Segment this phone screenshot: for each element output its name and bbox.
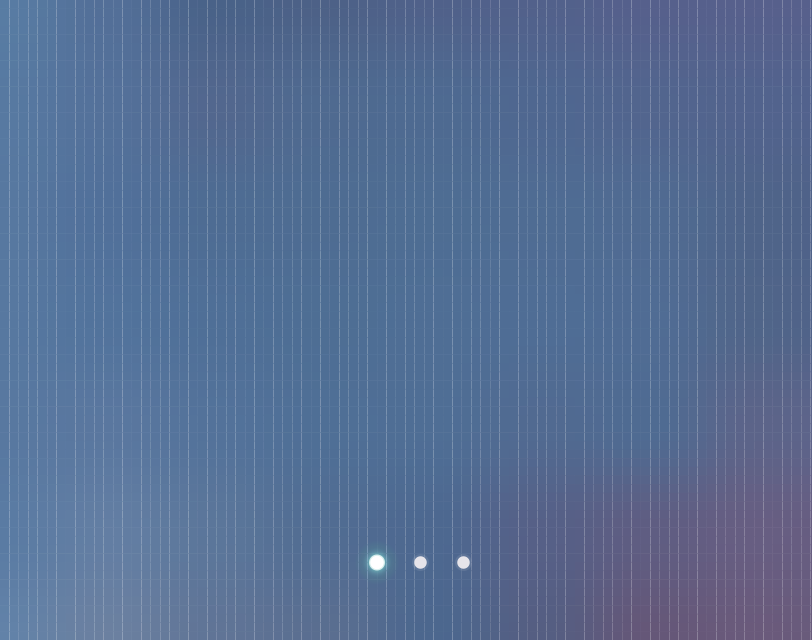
button[interactable]: Page 3 bbox=[441, 540, 485, 584]
button[interactable]: Page 1 bbox=[355, 540, 399, 584]
button[interactable]: Page 2 bbox=[398, 540, 442, 584]
